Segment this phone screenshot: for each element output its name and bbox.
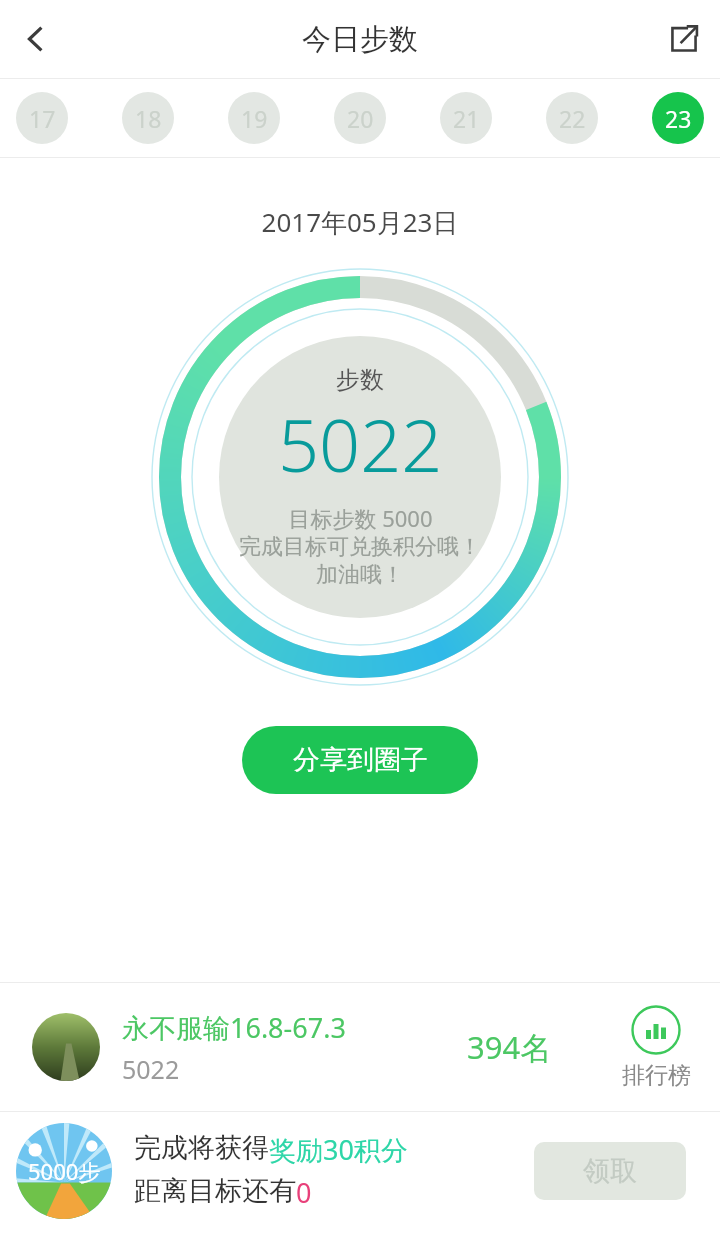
staticText: 完成目标可兑换积分哦！ <box>239 533 481 561</box>
staticText: 19 <box>241 103 268 134</box>
staticText: 20 <box>347 103 374 134</box>
staticText: 排行榜 <box>622 1061 691 1090</box>
button[interactable]: 18 <box>122 92 174 144</box>
staticText: 5022 <box>122 1052 180 1086</box>
button[interactable]: Back <box>0 3 72 75</box>
staticText: 永不服输16.8-67.3 <box>122 1009 346 1046</box>
button[interactable]: 排行榜 <box>606 1005 706 1090</box>
staticText: 完成将获得 <box>134 1131 269 1165</box>
staticText: 22 <box>559 103 586 134</box>
staticText: 18 <box>135 103 162 134</box>
staticText: 分享到圈子 <box>293 743 428 777</box>
button[interactable]: 20 <box>334 92 386 144</box>
staticText: 领取 <box>583 1154 637 1188</box>
staticText: 奖励30积分 <box>269 1131 408 1168</box>
staticText: 加油哦！ <box>316 561 404 589</box>
staticText: 目标步数 5000 <box>288 503 433 533</box>
staticText: 394名 <box>467 1026 552 1068</box>
staticText: 距离目标还有 <box>134 1174 296 1208</box>
button[interactable]: 领取 <box>534 1142 686 1200</box>
button[interactable]: 永不服输16.8-67.3 <box>0 983 720 1111</box>
staticText: 5000步 <box>28 1156 101 1186</box>
staticText: 0 <box>296 1174 312 1211</box>
button[interactable]: 分享到圈子 <box>242 726 478 794</box>
staticText: 今日步数 <box>302 21 418 58</box>
button[interactable]: 19 <box>228 92 280 144</box>
staticText: 23 <box>665 103 692 134</box>
staticText: 5022 <box>278 395 443 493</box>
staticText: 17 <box>29 103 56 134</box>
button[interactable]: Share <box>648 3 720 75</box>
button[interactable]: 23 <box>652 92 704 144</box>
staticText: 21 <box>453 103 480 134</box>
button[interactable]: 22 <box>546 92 598 144</box>
staticText: 2017年05月23日 <box>0 204 720 240</box>
staticText: 步数 <box>336 365 384 395</box>
button[interactable]: 17 <box>16 92 68 144</box>
button[interactable]: 21 <box>440 92 492 144</box>
